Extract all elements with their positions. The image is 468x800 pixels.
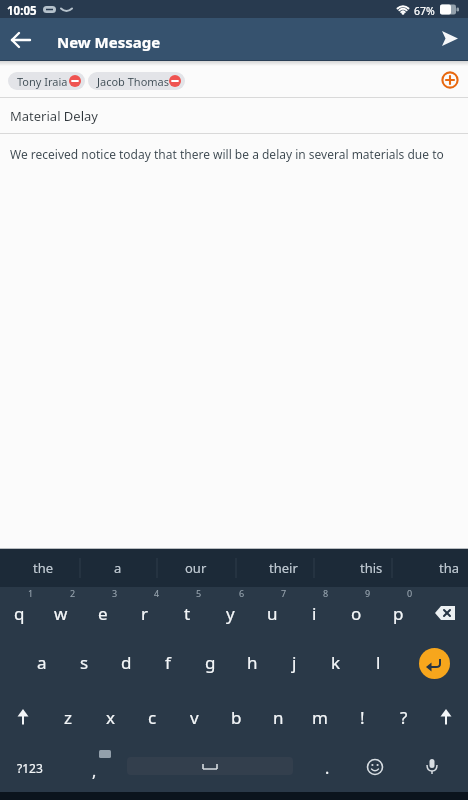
button[interactable] [419, 648, 450, 679]
staticText: the [33, 559, 54, 577]
staticText: a [114, 559, 122, 577]
button[interactable]: s [44, 647, 124, 677]
button[interactable]: m [280, 702, 360, 732]
button[interactable]: c [112, 702, 192, 732]
button[interactable]: h [212, 647, 292, 677]
button[interactable]: p [358, 598, 438, 628]
staticText: v [190, 706, 199, 729]
staticText: 2 [70, 587, 76, 599]
staticText: k [331, 651, 341, 674]
button[interactable]: 6 [202, 578, 282, 608]
staticText: w [54, 602, 68, 625]
staticText: x [106, 706, 115, 729]
button[interactable]: x [70, 702, 150, 732]
staticText: this [360, 559, 383, 577]
button[interactable]: . [287, 753, 367, 783]
button[interactable]: b [196, 702, 276, 732]
staticText: . [325, 757, 330, 779]
button[interactable]: w [21, 598, 101, 628]
staticText: a [37, 651, 47, 674]
button[interactable]: a [2, 647, 82, 677]
button[interactable]: j [254, 647, 334, 677]
button[interactable]: u [232, 598, 312, 628]
staticText: z [64, 706, 72, 729]
staticText: 0 [407, 587, 413, 599]
button[interactable]: t [147, 598, 227, 628]
staticText: 67% [414, 4, 435, 18]
button[interactable]: ?123 [0, 753, 70, 783]
staticText: 7 [281, 587, 287, 599]
button[interactable]: 0 [370, 578, 450, 608]
staticText: 8 [323, 587, 329, 599]
staticText: 4 [154, 587, 160, 599]
staticText: 1 [28, 587, 34, 599]
button[interactable]: l [338, 647, 418, 677]
staticText: t [184, 602, 191, 625]
button[interactable]: Tony Iraia [8, 72, 85, 90]
staticText: h [247, 651, 258, 674]
button[interactable]: Jacob Thomas [88, 72, 185, 90]
button[interactable]: the [3, 553, 83, 583]
button[interactable]: o [316, 598, 396, 628]
staticText: 5 [196, 587, 202, 599]
button[interactable] [434, 26, 462, 52]
staticText: n [273, 706, 284, 729]
button[interactable]: 1 [0, 578, 71, 608]
staticText: m [312, 706, 328, 729]
button[interactable]: this [331, 553, 411, 583]
staticText: Tony Iraia [17, 74, 68, 89]
staticText: 6 [239, 587, 245, 599]
button[interactable] [441, 71, 459, 89]
button[interactable]: 5 [159, 578, 239, 608]
button[interactable]: f [128, 647, 208, 677]
button[interactable] [9, 703, 37, 731]
button[interactable]: g [170, 647, 250, 677]
staticText: b [231, 706, 242, 729]
button[interactable]: a [78, 553, 158, 583]
staticText: s [80, 651, 89, 674]
button[interactable]: v [154, 702, 234, 732]
button[interactable]: 9 [328, 578, 408, 608]
button[interactable]: 3 [75, 578, 155, 608]
button[interactable]: their [243, 553, 323, 583]
button[interactable]: z [28, 702, 108, 732]
staticText: r [141, 602, 149, 625]
staticText: 10:05 [7, 3, 37, 19]
button[interactable]: 8 [286, 578, 366, 608]
staticText: tha [439, 559, 460, 577]
staticText: 9 [365, 587, 371, 599]
button[interactable]: 4 [117, 578, 197, 608]
button[interactable] [8, 27, 34, 53]
button[interactable] [127, 757, 293, 775]
staticText: our [185, 559, 207, 577]
button[interactable]: e [63, 598, 143, 628]
button[interactable]: our [156, 553, 236, 583]
button[interactable] [432, 703, 460, 731]
staticText: their [269, 559, 298, 577]
staticText: y [226, 602, 235, 625]
button[interactable]: n [238, 702, 318, 732]
button[interactable]: We received notice today that there will… [0, 134, 468, 174]
button[interactable]: r [105, 598, 185, 628]
button[interactable]: Material Delay [0, 98, 468, 133]
button[interactable]: d [86, 647, 166, 677]
staticText: c [148, 706, 157, 729]
button[interactable]: y [190, 598, 270, 628]
button[interactable] [430, 601, 460, 625]
staticText: 3 [112, 587, 118, 599]
button[interactable]: q [0, 598, 59, 628]
button[interactable]: k [296, 647, 376, 677]
staticText: q [14, 602, 25, 625]
staticText: i [312, 602, 317, 625]
button[interactable]: i [274, 598, 354, 628]
button[interactable]: ? [364, 702, 444, 732]
button[interactable]: ! [322, 702, 402, 732]
button[interactable]: , [54, 756, 134, 786]
button[interactable]: 7 [244, 578, 324, 608]
button[interactable]: 2 [33, 578, 113, 608]
button[interactable]: tha [409, 553, 468, 583]
staticText: Material Delay [10, 107, 98, 125]
staticText: g [205, 651, 216, 674]
staticText: u [267, 602, 278, 625]
staticText: ! [360, 706, 365, 729]
